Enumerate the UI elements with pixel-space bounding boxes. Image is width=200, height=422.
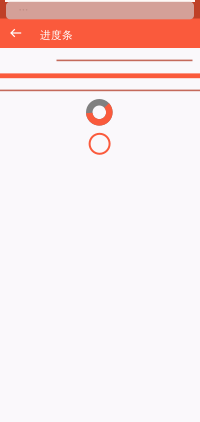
button[interactable]: Back <box>5 20 31 46</box>
staticText: 进度条 <box>40 29 73 42</box>
